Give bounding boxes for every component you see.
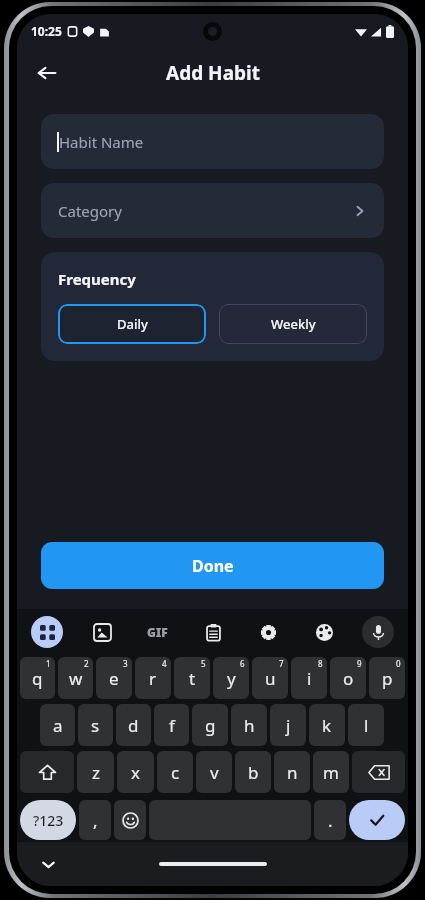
staticText: 4 xyxy=(162,658,167,669)
button[interactable]: o xyxy=(330,657,366,699)
staticText: . xyxy=(328,809,333,832)
staticText: 1 xyxy=(46,658,51,669)
button[interactable]: g xyxy=(192,704,228,746)
button[interactable]: Voice input xyxy=(362,616,394,648)
staticText: a xyxy=(53,714,63,737)
button[interactable]: h xyxy=(231,704,267,746)
staticText: s xyxy=(91,714,100,737)
button[interactable]: Done xyxy=(41,542,384,589)
staticText: 0 xyxy=(396,658,401,669)
button[interactable]: d xyxy=(116,704,151,746)
button[interactable]: p xyxy=(369,657,405,699)
staticText: w xyxy=(69,667,83,690)
button[interactable]: a xyxy=(40,704,75,746)
button[interactable]: i xyxy=(291,657,327,699)
staticText: 3 xyxy=(123,658,128,669)
staticText: r xyxy=(149,667,157,690)
staticText: g xyxy=(205,714,216,737)
button[interactable]: Clipboard xyxy=(196,615,230,649)
button[interactable]: z xyxy=(77,751,114,793)
button[interactable]: l xyxy=(348,704,384,746)
button[interactable]: u xyxy=(252,657,288,699)
staticText: v xyxy=(210,761,219,784)
staticText: o xyxy=(343,667,354,690)
button[interactable]: Keyboard tools xyxy=(31,616,63,648)
button[interactable]: Enter xyxy=(349,800,405,840)
staticText: Frequency xyxy=(58,269,136,289)
staticText: l xyxy=(364,714,369,737)
button[interactable]: Habit Name xyxy=(41,114,384,169)
button[interactable]: k xyxy=(309,704,345,746)
staticText: 10:25 xyxy=(31,23,62,39)
button[interactable]: Shift xyxy=(20,751,74,793)
staticText: Add Habit xyxy=(166,60,260,86)
button[interactable]: Emoji xyxy=(114,800,146,840)
button[interactable]: Backspace xyxy=(352,751,405,793)
staticText: m xyxy=(323,761,339,784)
staticText: 8 xyxy=(318,658,323,669)
button[interactable]: y xyxy=(213,657,249,699)
staticText: 5 xyxy=(201,658,206,669)
button[interactable]: Daily xyxy=(58,304,206,344)
staticText: b xyxy=(248,761,259,784)
button[interactable]: f xyxy=(154,704,189,746)
staticText: Category xyxy=(58,201,122,221)
staticText: e xyxy=(109,667,119,690)
staticText: Daily xyxy=(117,315,148,333)
button[interactable]: e xyxy=(96,657,132,699)
button[interactable]: r xyxy=(135,657,171,699)
button[interactable]: q xyxy=(20,657,55,699)
button[interactable]: Weekly xyxy=(219,304,367,344)
staticText: i xyxy=(307,667,312,690)
staticText: z xyxy=(92,761,100,784)
staticText: 6 xyxy=(240,658,245,669)
button[interactable]: s xyxy=(78,704,113,746)
staticText: , xyxy=(93,809,98,832)
button[interactable]: Themes xyxy=(307,615,341,649)
staticText: x xyxy=(131,761,140,784)
button[interactable]: Sticker xyxy=(85,615,119,649)
staticText: ?123 xyxy=(33,811,64,830)
staticText: GIF xyxy=(147,624,168,640)
staticText: n xyxy=(287,761,298,784)
button[interactable]: GIF xyxy=(140,615,174,649)
staticText: k xyxy=(322,714,332,737)
staticText: Done xyxy=(192,555,234,577)
button[interactable]: Comma xyxy=(79,800,111,840)
button[interactable]: v xyxy=(196,751,232,793)
button[interactable]: w xyxy=(58,657,93,699)
button[interactable]: j xyxy=(270,704,306,746)
staticText: 7 xyxy=(279,658,284,669)
button[interactable]: b xyxy=(235,751,271,793)
button[interactable]: t xyxy=(174,657,210,699)
staticText: f xyxy=(169,714,175,737)
staticText: j xyxy=(286,714,291,737)
staticText: 2 xyxy=(84,658,89,669)
button[interactable]: Hide keyboard xyxy=(33,849,63,879)
button[interactable]: m xyxy=(313,751,349,793)
staticText: y xyxy=(227,667,236,690)
button[interactable]: Period xyxy=(314,800,346,840)
staticText: h xyxy=(244,714,255,737)
staticText: t xyxy=(189,667,196,690)
button[interactable]: Category xyxy=(41,183,384,238)
staticText: p xyxy=(382,667,393,690)
button[interactable]: Settings xyxy=(251,615,285,649)
staticText: d xyxy=(128,714,139,737)
button[interactable]: n xyxy=(274,751,310,793)
button[interactable]: x xyxy=(117,751,154,793)
button[interactable]: Back xyxy=(25,51,69,95)
staticText: u xyxy=(265,667,276,690)
staticText: q xyxy=(32,667,43,690)
button[interactable]: ?123 xyxy=(20,800,76,840)
staticText: c xyxy=(171,761,180,784)
staticText: Habit Name xyxy=(59,132,144,152)
staticText: Weekly xyxy=(271,315,316,333)
button[interactable]: c xyxy=(157,751,193,793)
staticText: 9 xyxy=(357,658,362,669)
